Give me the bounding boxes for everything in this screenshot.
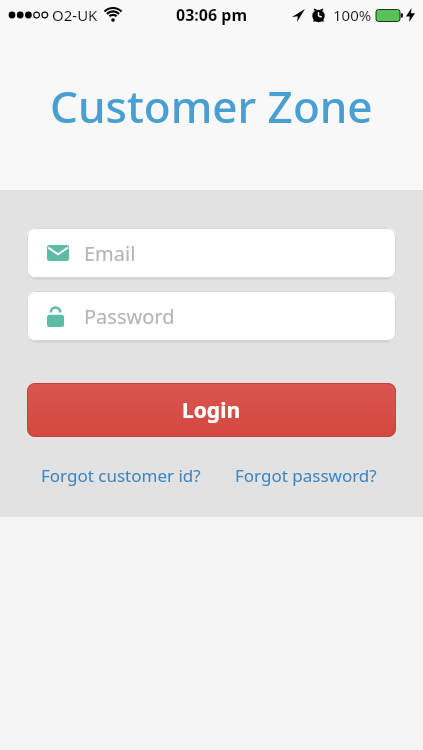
staticText: Password: [84, 303, 175, 330]
button[interactable]: Forgot customer id?: [41, 464, 201, 487]
button[interactable]: Email: [27, 228, 396, 278]
staticText: Login: [182, 396, 241, 425]
staticText: 03:06 pm: [176, 4, 247, 26]
button[interactable]: Password: [27, 291, 396, 341]
button[interactable]: Login: [27, 383, 396, 437]
button[interactable]: Forgot password?: [235, 464, 377, 487]
staticText: O2-UK: [52, 5, 98, 25]
staticText: Email: [84, 240, 136, 267]
staticText: Customer Zone: [50, 76, 373, 136]
staticText: 100%: [333, 5, 372, 25]
